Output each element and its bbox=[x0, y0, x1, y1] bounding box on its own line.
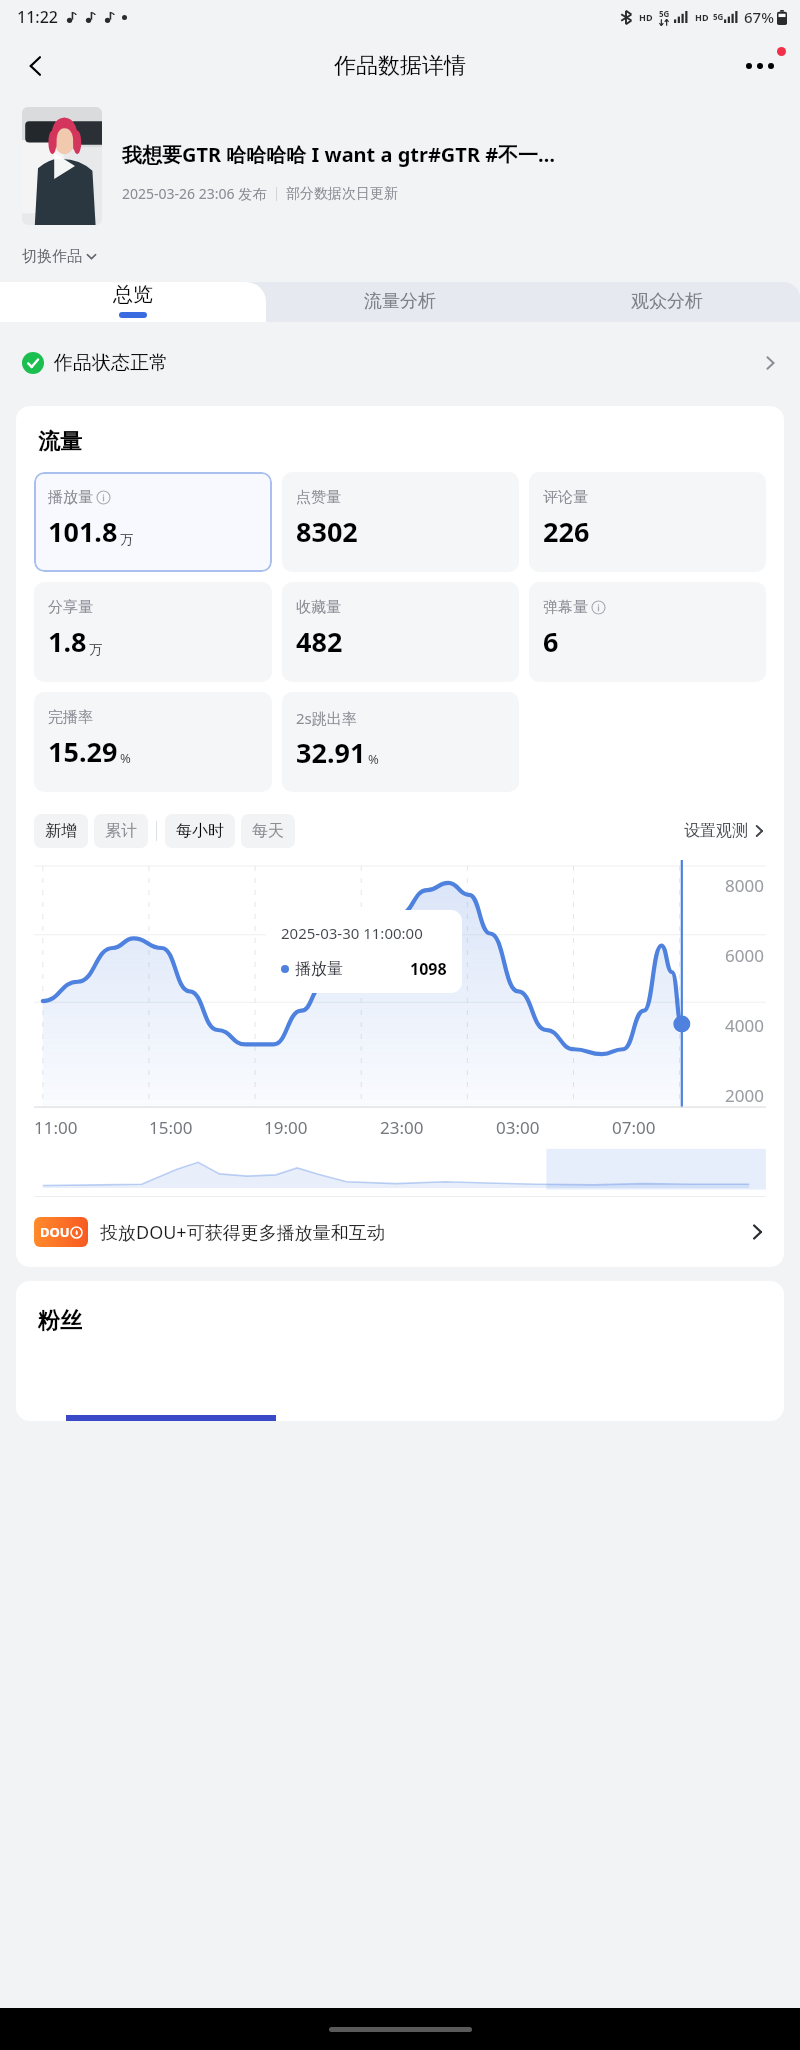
button[interactable]: 观众分析 bbox=[533, 282, 800, 322]
staticText: 1098 bbox=[410, 958, 447, 980]
button[interactable]: 点赞量 bbox=[282, 472, 519, 572]
button[interactable]: 完播率 bbox=[34, 692, 272, 792]
staticText: 播放量 bbox=[48, 488, 93, 507]
button[interactable]: 弹幕量 bbox=[529, 582, 766, 682]
staticText: 点赞量 bbox=[296, 488, 341, 507]
staticText: 切换作品 bbox=[22, 247, 82, 266]
staticText: 设置观测 bbox=[684, 821, 748, 841]
button[interactable]: 分享量 bbox=[34, 582, 272, 682]
staticText: 弹幕量 bbox=[543, 598, 588, 617]
button[interactable]: More options bbox=[732, 38, 788, 94]
staticText: 5G bbox=[713, 11, 724, 22]
staticText: 19:00 bbox=[264, 1116, 308, 1139]
staticText: 32.91 bbox=[296, 734, 366, 771]
button[interactable]: 收藏量 bbox=[282, 582, 519, 682]
staticText: 我想要GTR 哈哈哈哈 I want a gtr#GTR #不一… bbox=[122, 141, 556, 168]
button[interactable]: 每天 bbox=[241, 814, 295, 848]
staticText: 万 bbox=[89, 641, 102, 657]
staticText: 收藏量 bbox=[296, 598, 341, 617]
button[interactable]: 2s跳出率 bbox=[282, 692, 519, 792]
button[interactable]: 新增 bbox=[34, 814, 88, 848]
staticText: 2s跳出率 bbox=[296, 708, 357, 728]
staticText: 15:00 bbox=[149, 1116, 193, 1139]
staticText: 完播率 bbox=[48, 708, 93, 727]
staticText: 482 bbox=[296, 623, 343, 660]
button[interactable]: 流量分析 bbox=[266, 282, 533, 322]
staticText: 03:00 bbox=[496, 1116, 540, 1139]
staticText: 新增 bbox=[45, 821, 77, 841]
staticText: 分享量 bbox=[48, 598, 93, 617]
staticText: 8000 bbox=[725, 874, 764, 897]
staticText: 226 bbox=[543, 513, 590, 550]
staticText: 2025-03-30 11:00:00 bbox=[281, 923, 423, 943]
button[interactable]: 评论量 bbox=[529, 472, 766, 572]
staticText: 每天 bbox=[252, 821, 284, 841]
button[interactable]: 每小时 bbox=[165, 814, 235, 848]
staticText: 万 bbox=[120, 531, 133, 547]
staticText: 07:00 bbox=[612, 1116, 656, 1139]
staticText: 粉丝 bbox=[38, 1307, 82, 1335]
staticText: 投放DOU+可获得更多播放量和互动 bbox=[100, 1220, 385, 1245]
button[interactable]: 设置观测 bbox=[684, 821, 766, 841]
staticText: 4000 bbox=[725, 1014, 764, 1037]
staticText: 15.29 bbox=[48, 733, 118, 770]
staticText: 23:00 bbox=[380, 1116, 424, 1139]
button[interactable]: 总览 bbox=[0, 282, 266, 322]
staticText: 11:00 bbox=[34, 1116, 78, 1139]
button[interactable]: 累计 bbox=[94, 814, 148, 848]
staticText: 部分数据次日更新 bbox=[286, 185, 398, 203]
button[interactable]: 播放量 bbox=[34, 472, 272, 572]
staticText: 8302 bbox=[296, 513, 358, 550]
staticText: 101.8 bbox=[48, 513, 118, 550]
button[interactable]: 切换作品 bbox=[22, 247, 98, 266]
button[interactable]: 作品状态正常 bbox=[22, 334, 778, 392]
staticText: 2000 bbox=[725, 1084, 764, 1107]
staticText: 2025-03-26 23:06 发布 bbox=[122, 184, 267, 203]
staticText: 流量分析 bbox=[364, 290, 436, 313]
staticText: HD bbox=[639, 11, 653, 23]
staticText: 67% bbox=[744, 7, 774, 27]
staticText: 5G bbox=[659, 8, 670, 19]
staticText: 1.8 bbox=[48, 623, 87, 660]
staticText: 作品状态正常 bbox=[54, 351, 168, 375]
staticText: 评论量 bbox=[543, 488, 588, 507]
staticText: 播放量 bbox=[295, 959, 343, 979]
staticText: 11:22 bbox=[17, 6, 58, 28]
button[interactable]: DOU bbox=[34, 1197, 766, 1267]
button[interactable]: 我想要GTR 哈哈哈哈 I want a gtr#GTR #不一… bbox=[22, 107, 778, 225]
staticText: 观众分析 bbox=[631, 290, 703, 313]
staticText: 作品数据详情 bbox=[334, 52, 466, 80]
staticText: 总览 bbox=[113, 282, 153, 307]
staticText: 6000 bbox=[725, 944, 764, 967]
staticText: 每小时 bbox=[176, 821, 224, 841]
staticText: DOU bbox=[40, 1223, 70, 1241]
staticText: 累计 bbox=[105, 821, 137, 841]
staticText: 流量 bbox=[38, 428, 82, 456]
button[interactable]: Back bbox=[10, 40, 62, 92]
staticText: % bbox=[120, 749, 131, 767]
staticText: % bbox=[368, 750, 379, 768]
staticText: HD bbox=[695, 11, 709, 23]
staticText: 6 bbox=[543, 623, 559, 660]
